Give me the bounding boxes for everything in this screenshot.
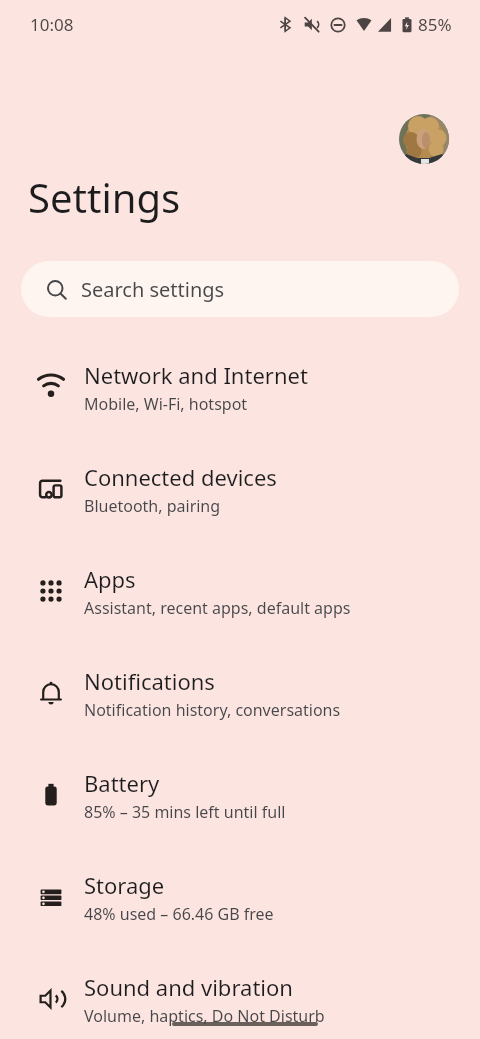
staticText: 85% – 35 mins left until full bbox=[84, 801, 286, 823]
staticText: Bluetooth, pairing bbox=[84, 495, 221, 517]
button[interactable] bbox=[399, 114, 449, 164]
staticText: Mobile, Wi-Fi, hotspot bbox=[84, 393, 248, 415]
button[interactable]: Apps bbox=[0, 540, 480, 642]
button[interactable]: Network and Internet bbox=[0, 336, 480, 438]
staticText: Volume, haptics, Do Not Disturb bbox=[84, 1005, 325, 1027]
staticText: 48% used – 66.46 GB free bbox=[84, 903, 274, 925]
staticText: Search settings bbox=[81, 276, 225, 303]
button[interactable]: Notifications bbox=[0, 642, 480, 744]
staticText: Sound and vibration bbox=[84, 972, 293, 1002]
button[interactable]: Connected devices bbox=[0, 438, 480, 540]
staticText: Connected devices bbox=[84, 462, 277, 492]
staticText: Notification history, conversations bbox=[84, 699, 341, 721]
staticText: Storage bbox=[84, 870, 165, 900]
button[interactable]: Battery bbox=[0, 744, 480, 846]
staticText: Notifications bbox=[84, 666, 215, 696]
button[interactable]: Sound and vibration bbox=[0, 948, 480, 1039]
staticText: Settings bbox=[28, 170, 181, 224]
staticText: 85% bbox=[418, 13, 452, 36]
staticText: Battery bbox=[84, 768, 160, 798]
button[interactable]: Storage bbox=[0, 846, 480, 948]
staticText: 10:08 bbox=[30, 13, 74, 36]
staticText: Network and Internet bbox=[84, 360, 308, 390]
staticText: Apps bbox=[84, 564, 136, 594]
staticText: Assistant, recent apps, default apps bbox=[84, 597, 351, 619]
button[interactable]: Search settings bbox=[21, 261, 459, 317]
